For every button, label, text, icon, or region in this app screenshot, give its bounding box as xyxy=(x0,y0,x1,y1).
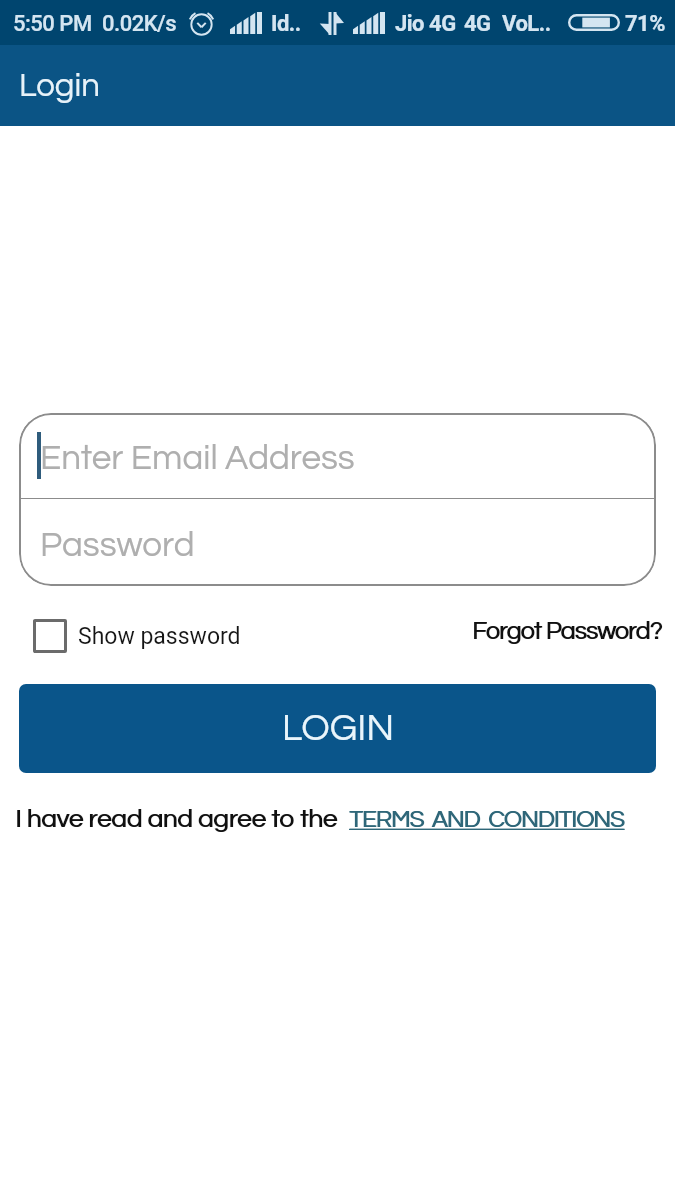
staticText: Password xyxy=(40,527,195,563)
staticText: 5:50 PM xyxy=(13,11,92,37)
staticText: Jio 4G xyxy=(395,11,456,37)
staticText: 4G xyxy=(464,11,491,37)
other: Alarm xyxy=(187,12,216,37)
button[interactable]: Forgot Password? xyxy=(472,618,662,644)
button[interactable]: LOGIN xyxy=(19,684,656,773)
staticText: TERMS AND CONDITIONS xyxy=(349,807,624,832)
staticText: I have read and agree to the xyxy=(16,806,338,833)
staticText: TERMS AND CONDITIONS xyxy=(350,807,625,832)
staticText: Forgot Password? xyxy=(472,618,662,644)
staticText: VoL.. xyxy=(502,11,551,37)
staticText: Show password xyxy=(78,623,241,650)
staticText: Enter Email Address xyxy=(40,440,355,476)
staticText: Login xyxy=(19,69,100,103)
staticText: I have read and agree to the xyxy=(15,806,337,833)
button[interactable]: TERMS AND CONDITIONS xyxy=(349,807,624,832)
button[interactable]: Password xyxy=(19,499,656,585)
staticText: LOGIN xyxy=(282,709,394,748)
staticText: 0.02K/s xyxy=(102,11,177,37)
staticText: Forgot Password? xyxy=(473,618,663,644)
staticText: Id.. xyxy=(271,11,301,37)
button[interactable]: Enter Email Address xyxy=(19,413,656,498)
button[interactable]: Show password xyxy=(19,619,241,653)
staticText: 71% xyxy=(625,11,665,37)
other: Battery 71 percent xyxy=(568,14,620,31)
